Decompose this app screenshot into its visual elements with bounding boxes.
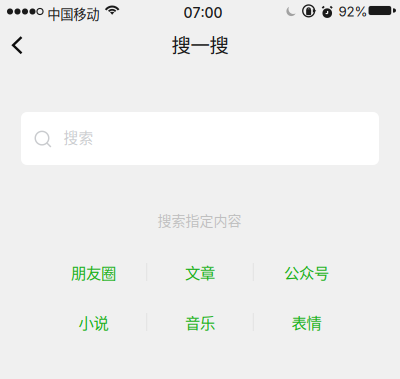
staticText: 搜索 [63, 126, 93, 147]
button[interactable]: 公众号 [253, 254, 360, 290]
staticText: 朋友圈 [71, 261, 116, 283]
staticText: 中国移动 [47, 4, 99, 23]
staticText: 文章 [185, 261, 215, 283]
staticText: 07:00 [183, 4, 222, 21]
staticText: 搜索指定内容 [157, 210, 241, 230]
staticText: 音乐 [185, 311, 215, 333]
button[interactable]: 朋友圈 [40, 254, 147, 290]
button[interactable]: 返回 [0, 23, 39, 67]
staticText: 92% [338, 4, 367, 20]
staticText: 小说 [78, 311, 108, 333]
staticText: 公众号 [284, 261, 329, 283]
button[interactable]: 表情 [253, 304, 360, 340]
staticText: 表情 [292, 311, 322, 333]
staticText: 搜一搜 [171, 30, 228, 58]
button[interactable]: 文章 [147, 254, 253, 290]
button[interactable]: 搜索 [21, 112, 379, 165]
button[interactable]: 音乐 [147, 304, 253, 340]
button[interactable]: 小说 [40, 304, 147, 340]
